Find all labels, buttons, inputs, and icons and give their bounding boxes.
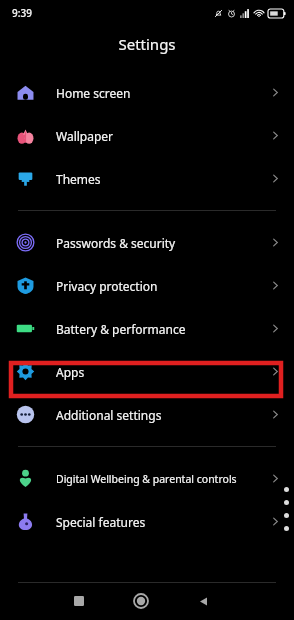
button[interactable]: Apps	[0, 350, 294, 393]
staticText: Privacy protection	[56, 278, 269, 294]
button[interactable]: Home	[124, 584, 158, 618]
button[interactable]: Passwords & security	[0, 221, 294, 264]
button[interactable]: Special features	[0, 500, 294, 543]
staticText: Passwords & security	[56, 235, 269, 251]
staticText: Battery & performance	[56, 321, 269, 337]
staticText: Settings	[118, 34, 176, 54]
button[interactable]: Back	[186, 584, 220, 618]
staticText: Digital Wellbeing & parental controls	[56, 472, 269, 486]
staticText: 9:39	[12, 6, 32, 20]
button[interactable]: Digital Wellbeing & parental controls	[0, 457, 294, 500]
staticText: Home screen	[56, 85, 269, 101]
staticText: Apps	[56, 364, 269, 380]
staticText: Wallpaper	[56, 128, 269, 144]
button[interactable]: Battery & performance	[0, 307, 294, 350]
button[interactable]: Recent apps	[62, 584, 96, 618]
staticText: Additional settings	[56, 407, 269, 423]
button[interactable]: Themes	[0, 157, 294, 200]
staticText: Themes	[56, 171, 269, 187]
button[interactable]: Home screen	[0, 71, 294, 114]
button[interactable]: Additional settings	[0, 393, 294, 436]
button[interactable]: Wallpaper	[0, 114, 294, 157]
button[interactable]: Privacy protection	[0, 264, 294, 307]
staticText: Special features	[56, 514, 269, 530]
